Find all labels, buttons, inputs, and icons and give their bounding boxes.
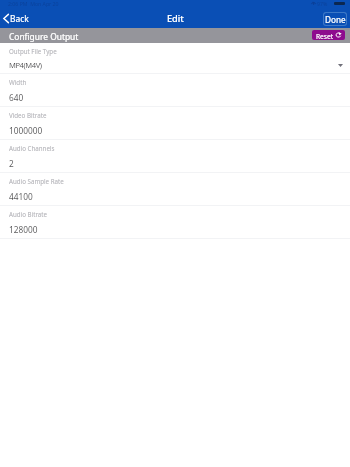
staticText: 97% xyxy=(317,0,328,7)
button[interactable]: Reset xyxy=(312,30,345,40)
staticText: Audio Channels xyxy=(9,144,55,152)
staticText: Output File Type xyxy=(9,47,57,55)
staticText: Configure Output xyxy=(9,31,79,42)
staticText: Width xyxy=(9,78,27,86)
staticText: Video Bitrate xyxy=(9,111,47,119)
staticText: 640 xyxy=(9,92,24,103)
staticText: 2 xyxy=(9,158,14,169)
button[interactable]: Back xyxy=(3,13,29,24)
staticText: Audio Sample Rate xyxy=(9,177,64,185)
button[interactable]: Audio Channels xyxy=(0,140,350,173)
staticText: 44100 xyxy=(9,191,33,202)
staticText: 1000000 xyxy=(9,125,43,136)
button[interactable]: Width xyxy=(0,74,350,107)
staticText: Back xyxy=(10,13,29,24)
button[interactable]: Video Bitrate xyxy=(0,107,350,140)
staticText: 2:06 PM Mon Apr 20 xyxy=(8,0,59,7)
button[interactable]: Output File Type xyxy=(0,43,350,74)
staticText: MP4(M4V) xyxy=(9,60,42,70)
staticText: 128000 xyxy=(9,224,38,235)
staticText: Edit xyxy=(167,12,184,25)
button[interactable]: Audio Sample Rate xyxy=(0,173,350,206)
button[interactable]: Audio Bitrate xyxy=(0,206,350,239)
button[interactable]: Done xyxy=(324,13,346,25)
staticText: Done xyxy=(325,14,346,25)
staticText: Audio Bitrate xyxy=(9,210,48,218)
staticText: Reset xyxy=(316,32,334,40)
